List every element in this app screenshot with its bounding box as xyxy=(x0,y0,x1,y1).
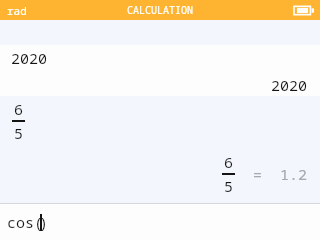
staticText: 5 xyxy=(14,123,24,143)
staticText: 5 xyxy=(224,176,234,196)
other: Battery xyxy=(294,5,314,16)
staticText: 6 xyxy=(224,152,234,172)
button[interactable]: cos( xyxy=(0,204,320,240)
staticText: cos( xyxy=(7,212,44,232)
staticText: ) xyxy=(39,212,49,232)
staticText: = 1.2 xyxy=(235,164,308,184)
staticText: 2020 xyxy=(271,75,308,95)
staticText: rad xyxy=(7,3,27,18)
staticText: CALCULATION xyxy=(127,3,193,17)
staticText: 2020 xyxy=(11,48,48,68)
button[interactable]: 2020 xyxy=(0,45,320,96)
button[interactable]: 6 xyxy=(0,96,320,203)
staticText: 6 xyxy=(14,99,24,119)
